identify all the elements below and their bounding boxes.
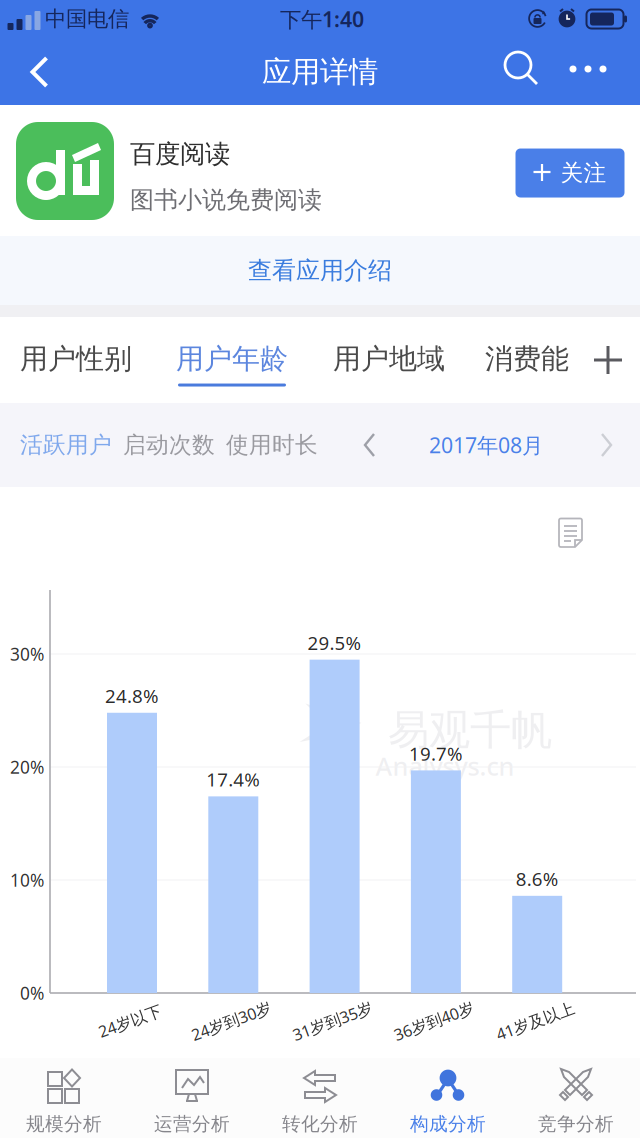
staticText: 8.6% xyxy=(516,866,559,891)
button[interactable]: 活跃用户 xyxy=(16,403,116,487)
button[interactable]: 用户地域 xyxy=(332,317,446,403)
button[interactable]: 启动次数 xyxy=(119,403,219,487)
button[interactable]: 查看应用介绍 xyxy=(0,236,640,305)
staticText: 0% xyxy=(20,981,44,1004)
button[interactable]: 消费能 xyxy=(484,317,570,403)
button[interactable]: 规模分析 xyxy=(0,1058,128,1138)
staticText: 10% xyxy=(10,868,44,891)
staticText: 应用详情 xyxy=(262,54,378,90)
staticText: 构成分析 xyxy=(410,1112,486,1135)
staticText: 用户地域 xyxy=(333,342,445,376)
staticText: 17.4% xyxy=(206,767,260,792)
staticText: 规模分析 xyxy=(26,1112,102,1135)
staticText: 31岁到35岁 xyxy=(291,1010,375,1032)
staticText: 活跃用户 xyxy=(20,431,112,459)
button[interactable]: Report xyxy=(545,507,597,559)
staticText: 百度阅读 xyxy=(130,138,230,169)
staticText: 24岁到30岁 xyxy=(189,1010,273,1032)
staticText: 24岁以下 xyxy=(97,1010,163,1032)
button[interactable]: 竞争分析 xyxy=(512,1058,640,1138)
staticText: 图书小说免费阅读 xyxy=(130,185,322,215)
staticText: 易观千帆 xyxy=(388,705,552,755)
staticText: 29.5% xyxy=(308,630,362,655)
staticText: 启动次数 xyxy=(123,431,215,459)
staticText: 转化分析 xyxy=(282,1112,358,1135)
button[interactable]: Back xyxy=(2,38,78,105)
button[interactable]: 转化分析 xyxy=(256,1058,384,1138)
button[interactable]: Add metric xyxy=(578,317,638,403)
button[interactable]: Next month xyxy=(576,403,636,487)
staticText: 中国电信 xyxy=(45,6,129,32)
button[interactable]: 使用时长 xyxy=(222,403,322,487)
staticText: 用户年龄 xyxy=(176,342,288,376)
staticText: 运营分析 xyxy=(154,1112,230,1135)
staticText: 2017年08月 xyxy=(429,431,543,459)
staticText: 30% xyxy=(10,642,44,665)
staticText: 36岁到40岁 xyxy=(392,1010,476,1032)
button[interactable]: Search xyxy=(488,35,556,102)
button[interactable]: Previous month xyxy=(340,403,400,487)
staticText: 20% xyxy=(10,755,44,778)
button[interactable]: 运营分析 xyxy=(128,1058,256,1138)
staticText: 使用时长 xyxy=(226,431,318,459)
staticText: 竞争分析 xyxy=(538,1112,614,1135)
staticText: 41岁及以上 xyxy=(494,1010,576,1032)
staticText: 下午1:40 xyxy=(280,5,364,33)
staticText: 关注 xyxy=(560,159,606,187)
button[interactable]: 用户性别 xyxy=(19,317,133,403)
staticText: 24.8% xyxy=(105,683,159,708)
staticText: 消费能 xyxy=(485,342,569,376)
staticText: 用户性别 xyxy=(20,342,132,376)
button[interactable]: More options xyxy=(548,35,628,102)
button[interactable]: 用户年龄 xyxy=(175,317,289,403)
staticText: Analysys.cn xyxy=(375,749,514,783)
button[interactable]: 关注 xyxy=(515,148,624,197)
staticText: 19.7% xyxy=(409,741,463,766)
button[interactable]: 构成分析 xyxy=(384,1058,512,1138)
staticText: 查看应用介绍 xyxy=(248,256,392,285)
